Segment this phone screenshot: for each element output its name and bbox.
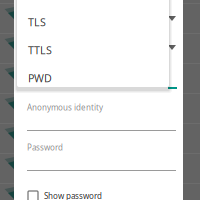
button[interactable]: PWD <box>17 64 169 92</box>
button[interactable]: TLS <box>17 8 169 36</box>
staticText: PWD <box>28 71 52 85</box>
staticText: Show password <box>44 191 102 200</box>
staticText: Password <box>27 142 63 153</box>
button[interactable]: TTLS <box>17 36 169 64</box>
staticText: Anonymous identity <box>27 102 103 113</box>
button[interactable]: Show password <box>28 189 148 200</box>
button[interactable]: Password <box>27 141 176 173</box>
button[interactable]: Anonymous identity <box>27 101 176 133</box>
staticText: TTLS <box>28 43 52 57</box>
staticText: TLS <box>28 15 46 29</box>
